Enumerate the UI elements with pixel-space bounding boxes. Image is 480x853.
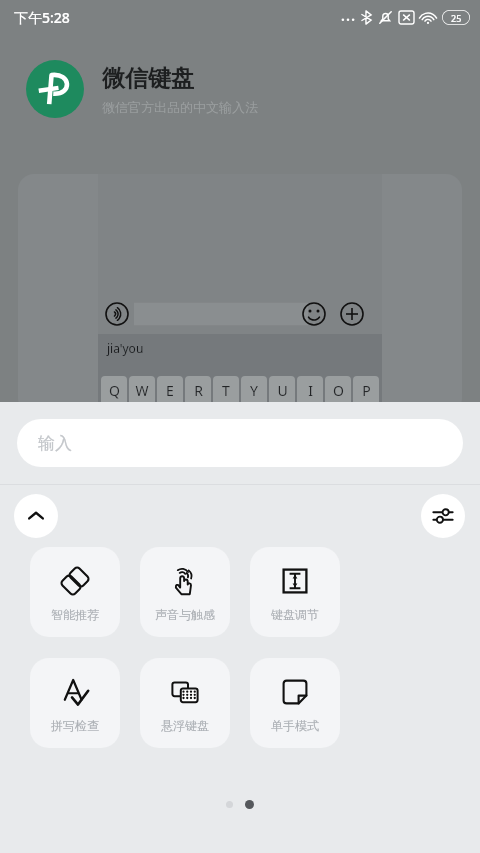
staticText: 单手模式 — [271, 718, 319, 733]
staticText: I — [308, 381, 313, 400]
staticText: 下午5:28 — [14, 8, 70, 27]
staticText: 25 — [451, 12, 462, 24]
button[interactable]: 设置 — [421, 494, 465, 538]
staticText: jia'you — [107, 340, 144, 356]
staticText: O — [333, 381, 344, 400]
staticText: 微信键盘 — [102, 64, 194, 93]
staticText: 微信官方出品的中文输入法 — [102, 99, 258, 115]
button[interactable]: 拼写检查 — [30, 658, 120, 748]
button[interactable]: 输入 — [17, 419, 463, 467]
button[interactable]: 声音与触感 — [140, 547, 230, 637]
staticText: W — [135, 381, 149, 400]
button[interactable]: 收起 — [14, 494, 58, 538]
staticText: 声音与触感 — [155, 607, 215, 622]
staticText: R — [194, 381, 203, 400]
staticText: P — [362, 381, 371, 400]
button[interactable] — [226, 801, 233, 808]
staticText: 悬浮键盘 — [161, 718, 209, 733]
staticText: Y — [250, 381, 258, 400]
staticText: Q — [109, 381, 120, 400]
staticText: 智能推荐 — [51, 607, 99, 622]
staticText: 键盘调节 — [271, 607, 319, 622]
staticText: T — [222, 381, 230, 400]
staticText: U — [277, 381, 288, 400]
staticText: 拼写检查 — [51, 718, 99, 733]
staticText: 输入 — [38, 433, 72, 454]
button[interactable]: 悬浮键盘 — [140, 658, 230, 748]
button[interactable] — [245, 800, 254, 809]
button[interactable]: 智能推荐 — [30, 547, 120, 637]
button[interactable]: 单手模式 — [250, 658, 340, 748]
button[interactable]: 键盘调节 — [250, 547, 340, 637]
staticText: E — [166, 381, 174, 400]
